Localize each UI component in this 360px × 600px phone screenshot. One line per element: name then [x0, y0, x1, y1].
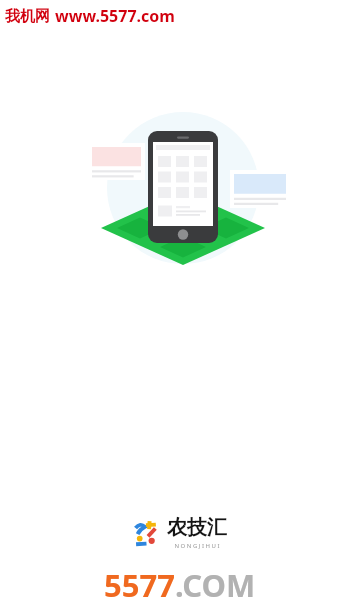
staticText: 农技汇	[167, 515, 227, 540]
staticText: www.5577.com	[55, 5, 175, 27]
staticText: 我机网	[5, 7, 50, 26]
staticText: N O N G J I H U I	[174, 542, 220, 550]
staticText: 5577	[104, 564, 175, 600]
staticText: .COM	[175, 564, 256, 600]
